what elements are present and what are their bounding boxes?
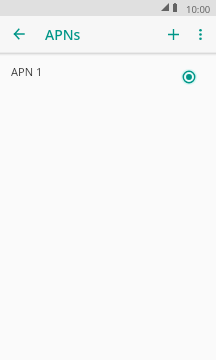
button[interactable]: APN 1	[0, 55, 216, 101]
staticText: 10:00	[186, 3, 211, 16]
button[interactable]: Add new APN	[159, 20, 187, 48]
button[interactable]: Navigate up	[5, 20, 33, 48]
button[interactable]: APN 1 selected	[178, 66, 200, 88]
staticText: APNs	[45, 25, 81, 44]
button[interactable]: More options	[186, 20, 214, 48]
staticText: APN 1	[11, 64, 43, 79]
